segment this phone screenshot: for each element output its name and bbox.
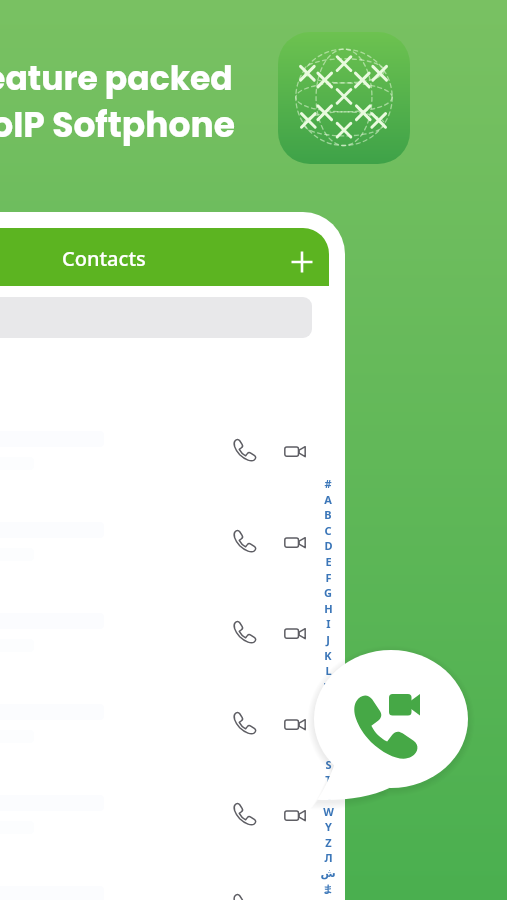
button[interactable]: Call xyxy=(232,802,258,828)
button[interactable]: Video call xyxy=(282,529,308,555)
staticText: T xyxy=(325,772,332,787)
staticText: S xyxy=(325,757,332,772)
button[interactable]: Video call xyxy=(282,802,308,828)
button[interactable]: Call xyxy=(232,893,258,900)
staticText: I xyxy=(326,616,331,631)
button[interactable]: Call xyxy=(0,769,329,860)
staticText: B xyxy=(324,507,332,522)
staticText: ش xyxy=(320,867,336,880)
staticText: F xyxy=(325,570,332,585)
button[interactable]: Video call xyxy=(282,711,308,737)
staticText: # xyxy=(324,476,332,491)
staticText: Л xyxy=(324,850,333,865)
button[interactable]: Call xyxy=(232,529,258,555)
button[interactable]: Call xyxy=(0,496,329,587)
button[interactable]: Start a video call xyxy=(300,635,485,820)
staticText: VoIP Softphone xyxy=(0,101,235,149)
button[interactable]: Call xyxy=(0,587,329,678)
staticText: D xyxy=(324,538,333,553)
staticText: A xyxy=(324,492,332,507)
button[interactable]: Call xyxy=(232,438,258,464)
staticText: Z xyxy=(325,835,332,850)
button[interactable]: VoIP softphone app icon xyxy=(278,32,410,164)
button[interactable]: Call xyxy=(232,620,258,646)
button[interactable]: Contacts xyxy=(0,228,329,286)
staticText: Y xyxy=(325,819,332,834)
staticText: ま xyxy=(322,882,334,896)
staticText: M xyxy=(323,679,334,694)
button[interactable]: Video call xyxy=(282,620,308,646)
button[interactable]: Call xyxy=(0,678,329,769)
staticText: W xyxy=(323,804,334,819)
staticText: C xyxy=(324,523,332,538)
button[interactable]: Call xyxy=(0,860,329,900)
staticText: K xyxy=(324,648,332,663)
button[interactable]: Call xyxy=(0,405,329,496)
staticText: Contacts xyxy=(62,245,146,272)
staticText: U xyxy=(324,788,333,803)
button[interactable]: Alphabet index xyxy=(317,475,339,896)
button[interactable]: Add contact xyxy=(285,245,319,279)
button[interactable]: Video call xyxy=(282,438,308,464)
staticText: J xyxy=(326,632,330,647)
button[interactable]: Call xyxy=(232,711,258,737)
staticText: L xyxy=(325,663,332,678)
staticText: E xyxy=(325,554,332,569)
staticText: Feature packed xyxy=(0,55,233,101)
staticText: H xyxy=(324,601,333,616)
staticText: G xyxy=(324,585,332,600)
